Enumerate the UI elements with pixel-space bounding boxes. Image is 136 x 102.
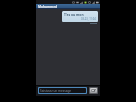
button[interactable]: Saisissez un message	[39, 88, 86, 93]
staticText: Mohammed	[38, 5, 58, 9]
staticText: Saisissez un message	[40, 89, 72, 93]
button[interactable]: Mohammed	[36, 4, 100, 9]
button[interactable]: T'es ou mon cochon ?	[62, 11, 98, 22]
button[interactable]: Send message	[90, 88, 97, 93]
staticText: T'es ou mon cochon ?	[64, 12, 96, 16]
staticText: 03-23, 11:04	[81, 17, 96, 21]
